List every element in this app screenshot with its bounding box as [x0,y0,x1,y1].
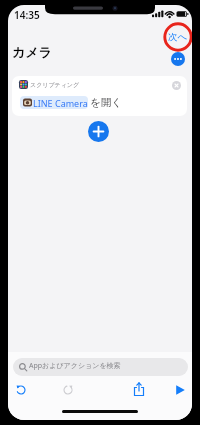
button[interactable]: Appおよびアクションを検索 [13,358,188,376]
staticText: LINE Camera [33,97,88,109]
button[interactable]: 次へ [165,29,191,45]
staticText: スクリプティング [30,81,80,89]
button[interactable]: LINE Camera [20,96,88,109]
staticText: 14:35 [14,8,40,22]
button[interactable] [15,384,27,396]
button[interactable] [171,52,185,66]
button[interactable] [88,121,109,142]
button[interactable] [62,384,74,396]
button[interactable]: スクリプティング [12,76,187,116]
button[interactable] [174,384,186,396]
staticText: カメラ [12,44,52,60]
staticText: Appおよびアクションを検索 [29,361,121,371]
staticText: を開く [90,96,122,109]
staticText: 次へ [168,31,188,43]
button[interactable] [133,382,145,397]
button[interactable] [172,81,181,90]
